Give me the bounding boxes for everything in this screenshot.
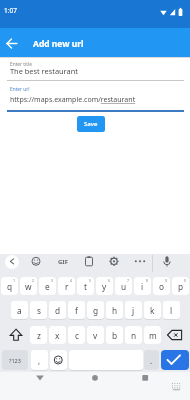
staticText: n <box>131 330 137 341</box>
staticText: r <box>65 281 69 292</box>
staticText: , <box>38 355 41 366</box>
button[interactable]: g <box>87 301 104 319</box>
staticText: o <box>159 281 165 292</box>
staticText: 9 <box>165 278 168 283</box>
staticText: v <box>93 330 98 341</box>
staticText: g <box>93 305 99 316</box>
staticText: y <box>102 281 107 292</box>
button[interactable]: x <box>49 326 66 344</box>
staticText: 5 <box>89 278 92 283</box>
button[interactable]: h <box>106 301 123 319</box>
button[interactable]: u <box>115 277 132 295</box>
staticText: f <box>75 305 78 316</box>
button[interactable] <box>133 371 157 387</box>
button[interactable] <box>28 371 52 387</box>
staticText: Enter url <box>10 86 30 93</box>
staticText: 8 <box>146 278 149 283</box>
button[interactable] <box>0 28 190 57</box>
button[interactable] <box>2 30 24 55</box>
button[interactable] <box>2 58 188 82</box>
button[interactable]: k <box>144 301 161 319</box>
button[interactable]: n <box>125 326 142 344</box>
button[interactable]: o <box>153 277 170 295</box>
button[interactable] <box>81 254 97 272</box>
staticText: s <box>37 305 41 316</box>
staticText: GIF <box>58 258 68 266</box>
staticText: 6 <box>108 278 111 283</box>
button[interactable]: s <box>30 301 47 319</box>
button[interactable] <box>55 254 71 272</box>
staticText: 7 <box>127 278 130 283</box>
staticText: https://maps.example.com/restaurant <box>10 95 136 105</box>
staticText: The best restaurant <box>10 66 78 76</box>
button[interactable] <box>2 326 28 344</box>
staticText: 1:07 <box>4 6 17 15</box>
staticText: 2 <box>32 278 35 283</box>
button[interactable] <box>5 255 19 269</box>
button[interactable]: d <box>49 301 66 319</box>
button[interactable] <box>83 371 107 387</box>
staticText: x <box>55 330 60 341</box>
staticText: 0 <box>184 278 187 283</box>
button[interactable]: v <box>87 326 104 344</box>
staticText: 3 <box>51 278 54 283</box>
button[interactable] <box>50 350 67 370</box>
button[interactable]: r <box>58 277 75 295</box>
button[interactable]: y <box>96 277 113 295</box>
button[interactable] <box>28 254 44 272</box>
button[interactable]: a <box>11 301 28 319</box>
button[interactable]: i <box>134 277 151 295</box>
button[interactable] <box>132 254 148 272</box>
button[interactable]: j <box>125 301 142 319</box>
button[interactable]: c <box>68 326 85 344</box>
staticText: m <box>149 330 157 341</box>
button[interactable] <box>159 254 175 272</box>
staticText: Save <box>84 120 98 128</box>
button[interactable] <box>106 254 122 272</box>
staticText: . <box>150 355 153 366</box>
button[interactable] <box>162 326 188 344</box>
button[interactable]: m <box>144 326 161 344</box>
button[interactable]: e <box>39 277 56 295</box>
button[interactable]: w <box>20 277 37 295</box>
staticText: a <box>17 305 22 316</box>
staticText: c <box>75 330 79 341</box>
staticText: 4 <box>70 278 73 283</box>
button[interactable]: p <box>172 277 189 295</box>
button[interactable]: q <box>1 277 18 295</box>
staticText: q <box>7 281 13 292</box>
staticText: k <box>150 305 155 316</box>
button[interactable]: , <box>31 350 48 370</box>
staticText: Enter title <box>10 61 32 68</box>
staticText: t <box>84 281 87 292</box>
staticText: j <box>132 305 135 316</box>
button[interactable] <box>2 84 188 112</box>
button[interactable] <box>168 381 184 393</box>
staticText: h <box>112 305 118 316</box>
button[interactable]: Save <box>77 116 105 132</box>
button[interactable]: f <box>68 301 85 319</box>
staticText: w <box>25 281 32 292</box>
staticText: Add new url <box>33 38 84 50</box>
staticText: u <box>121 281 127 292</box>
staticText: e <box>45 281 50 292</box>
staticText: p <box>178 281 184 292</box>
button[interactable]: t <box>77 277 94 295</box>
button[interactable] <box>161 350 189 370</box>
staticText: l <box>170 305 173 316</box>
staticText: ?123 <box>9 357 21 364</box>
button[interactable]: z <box>30 326 47 344</box>
staticText: z <box>37 330 41 341</box>
button[interactable]: b <box>106 326 123 344</box>
staticText: i <box>141 281 144 292</box>
staticText: d <box>55 305 61 316</box>
staticText: b <box>112 330 118 341</box>
staticText: 1 <box>13 278 16 283</box>
button[interactable]: . <box>144 350 159 370</box>
button[interactable]: ?123 <box>2 350 28 370</box>
button[interactable]: l <box>163 301 180 319</box>
